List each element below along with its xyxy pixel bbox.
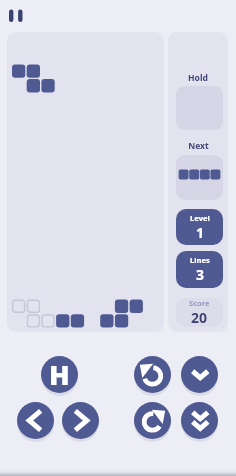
button[interactable]: Hard drop: [181, 402, 218, 439]
button[interactable]: Rotate counter clockwise: [134, 356, 171, 393]
button[interactable]: Level: [176, 209, 223, 245]
button[interactable]: Rotate clockwise: [134, 402, 171, 439]
staticText: Next: [188, 140, 209, 152]
staticText: Score: [189, 298, 210, 308]
button[interactable]: H: [41, 356, 78, 393]
button[interactable]: Pause: [4, 4, 28, 28]
button[interactable]: Score: [176, 298, 223, 327]
staticText: Level: [190, 213, 210, 223]
button[interactable]: Lines: [176, 251, 223, 288]
staticText: H: [49, 356, 70, 393]
staticText: Lines: [190, 255, 210, 265]
button[interactable]: Move left: [17, 402, 54, 439]
staticText: 20: [191, 308, 208, 327]
button[interactable]: Move right: [62, 402, 99, 439]
staticText: 3: [196, 265, 205, 284]
staticText: 1: [196, 223, 205, 242]
button[interactable]: Soft drop: [181, 356, 218, 393]
staticText: Hold: [188, 72, 208, 84]
